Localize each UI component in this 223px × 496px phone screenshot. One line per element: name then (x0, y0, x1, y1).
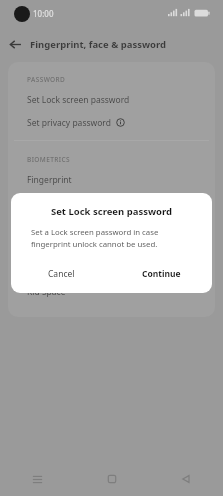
staticText: App lock (27, 240, 62, 252)
button[interactable]: Set Lock screen password (8, 88, 215, 111)
staticText: Set Lock screen password (27, 94, 130, 106)
staticText: Fingerprint, face & password (30, 38, 167, 51)
staticText: Cancel (48, 268, 75, 280)
staticText: 10:00 (33, 8, 54, 19)
button[interactable]: App lock (8, 234, 215, 257)
button[interactable]: Face (8, 191, 215, 214)
button[interactable]: Kid Space (8, 280, 215, 303)
staticText: Set a Lock screen password in case finge… (31, 227, 192, 249)
staticText: Private Safe (27, 263, 75, 275)
staticText: BIOMETRICS (27, 155, 71, 164)
staticText: PASSWORD (27, 75, 66, 84)
staticText: Set Lock screen password (11, 205, 212, 218)
button[interactable]: Fingerprint (8, 168, 215, 191)
button[interactable]: Back (0, 30, 30, 58)
staticText: Set privacy password (27, 117, 111, 129)
button[interactable]: Private Safe (8, 257, 215, 280)
button[interactable]: Cancel (11, 261, 111, 287)
staticText: Continue (142, 268, 181, 280)
staticText: Fingerprint (27, 174, 72, 186)
button[interactable]: Set privacy password (8, 111, 215, 134)
staticText: Kid Space (27, 286, 66, 298)
button[interactable]: Continue (111, 261, 212, 287)
